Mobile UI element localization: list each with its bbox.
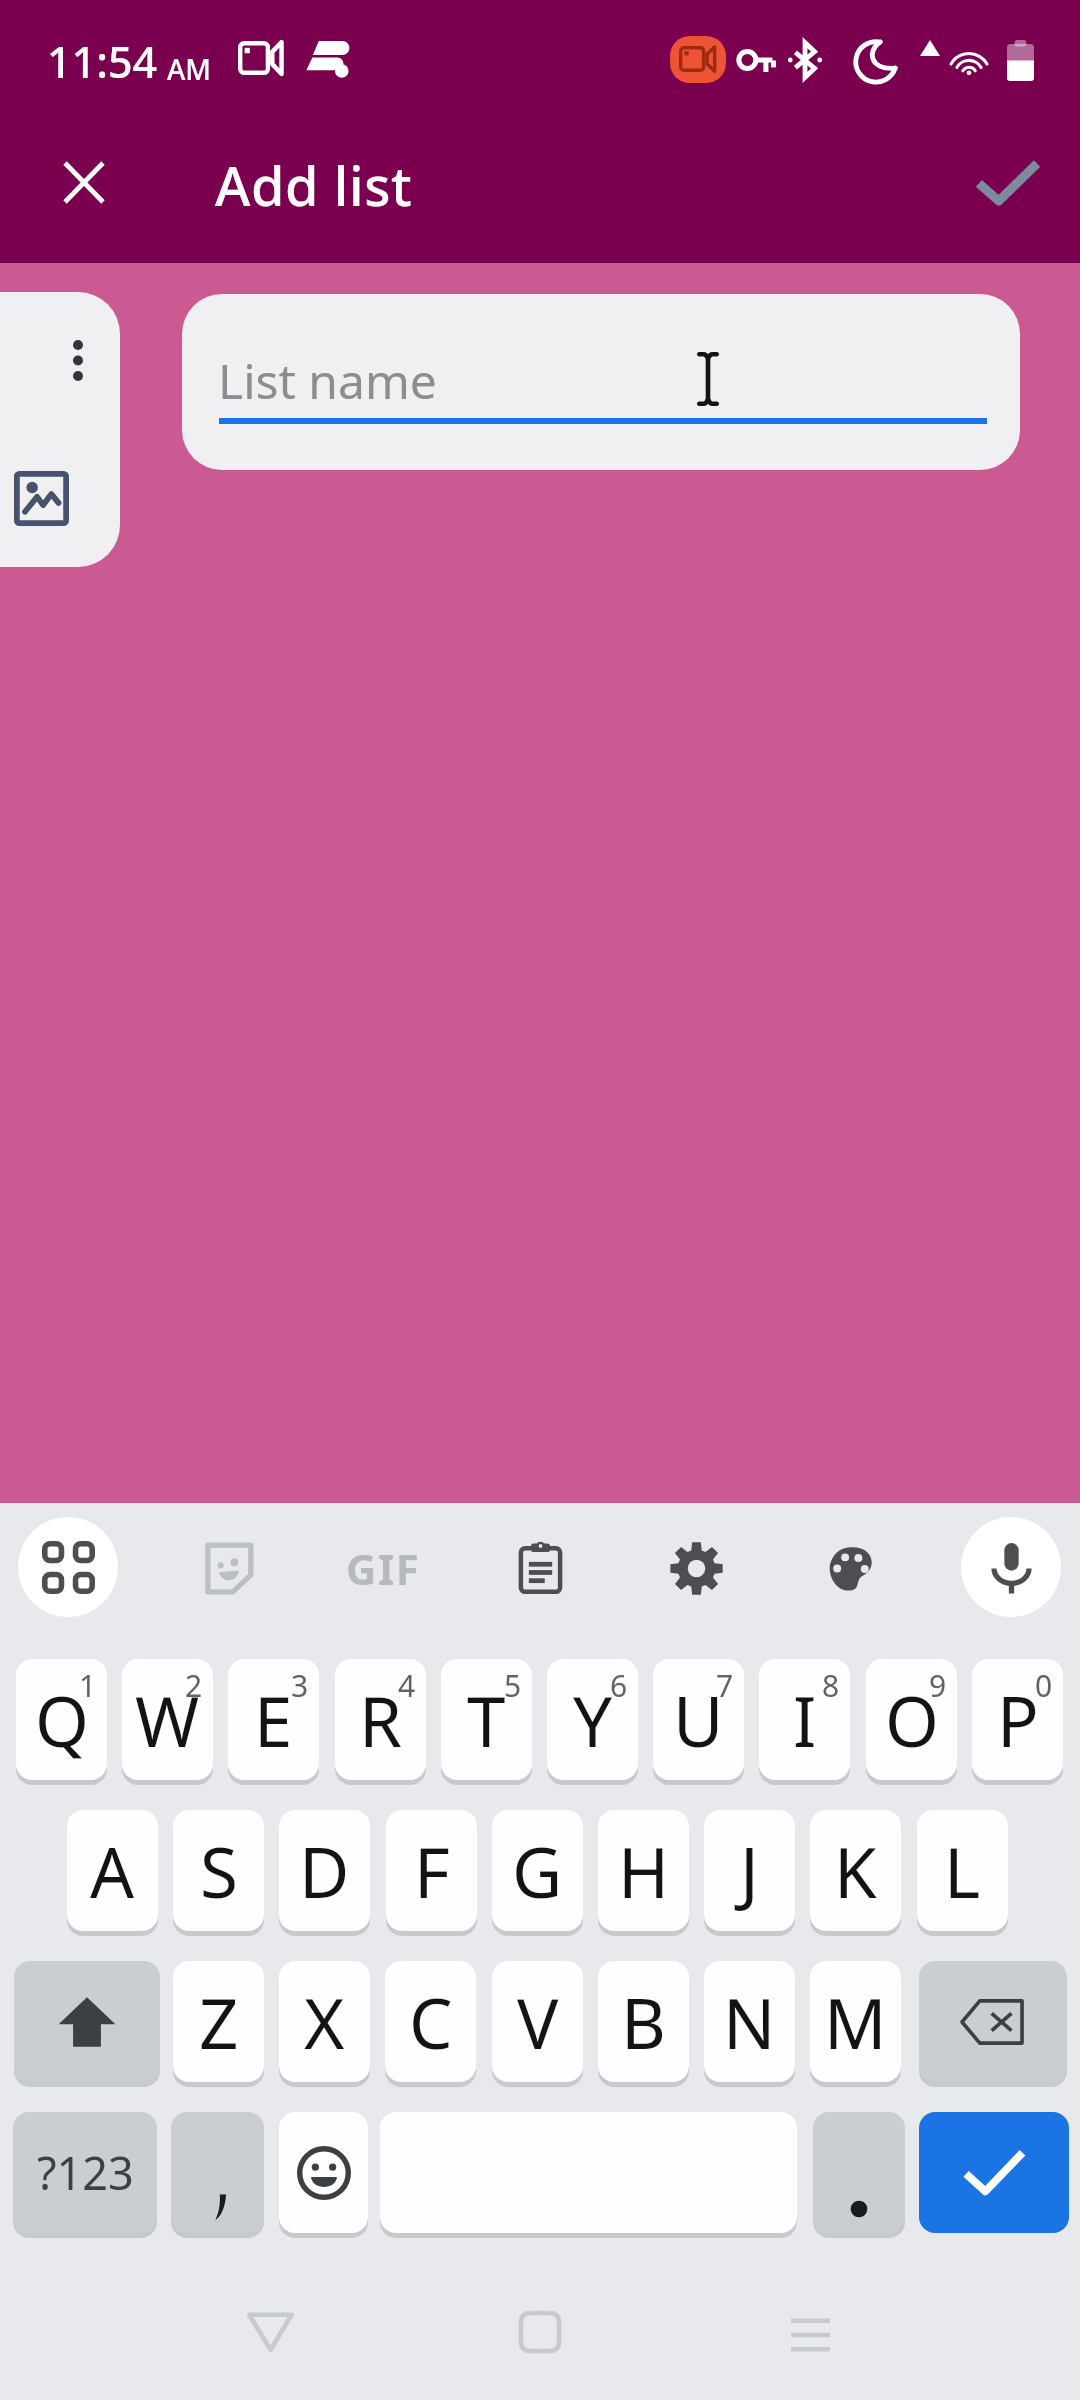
- staticText: V: [517, 1975, 559, 2069]
- staticText: List name: [218, 348, 437, 413]
- staticText: D: [299, 1824, 350, 1918]
- staticText: 9: [929, 1665, 947, 1706]
- button[interactable]: Comma: [171, 2112, 264, 2233]
- button[interactable]: Back: [225, 2287, 315, 2377]
- staticText: K: [834, 1824, 877, 1918]
- button[interactable]: List name: [182, 294, 1020, 470]
- button[interactable]: S: [173, 1810, 264, 1931]
- staticText: P: [997, 1673, 1039, 1767]
- staticText: Y: [573, 1673, 613, 1767]
- button[interactable]: Close: [29, 127, 139, 237]
- button[interactable]: W: [122, 1659, 213, 1780]
- button[interactable]: Add image: [0, 456, 83, 540]
- staticText: ?123: [37, 2142, 134, 2203]
- staticText: A: [90, 1824, 135, 1918]
- button[interactable]: Stickers: [177, 1518, 277, 1618]
- staticText: H: [618, 1824, 670, 1918]
- staticText: G: [512, 1824, 563, 1918]
- button[interactable]: U: [653, 1659, 744, 1780]
- staticText: R: [359, 1673, 402, 1767]
- staticText: E: [254, 1673, 293, 1767]
- staticText: 5: [504, 1665, 522, 1706]
- button[interactable]: Backspace: [919, 1961, 1067, 2082]
- button[interactable]: C: [385, 1961, 476, 2082]
- button[interactable]: Clipboard: [490, 1518, 590, 1618]
- button[interactable]: More options: [33, 315, 123, 405]
- staticText: O: [885, 1673, 939, 1767]
- button[interactable]: M: [810, 1961, 901, 2082]
- staticText: U: [673, 1673, 724, 1767]
- staticText: 4: [398, 1665, 416, 1706]
- button[interactable]: B: [598, 1961, 689, 2082]
- button[interactable]: A: [67, 1810, 158, 1931]
- staticText: X: [304, 1975, 345, 2069]
- button[interactable]: V: [492, 1961, 583, 2082]
- staticText: N: [723, 1975, 776, 2069]
- staticText: GIF: [346, 1540, 421, 1597]
- button[interactable]: Voice input: [961, 1517, 1061, 1617]
- button[interactable]: P: [972, 1659, 1063, 1780]
- button[interactable]: Z: [173, 1961, 264, 2082]
- button[interactable]: Save: [948, 127, 1068, 237]
- staticText: I: [793, 1673, 817, 1767]
- button[interactable]: Settings: [646, 1518, 746, 1618]
- staticText: Z: [199, 1975, 239, 2069]
- button[interactable]: Enter: [919, 2112, 1069, 2233]
- button[interactable]: Themes: [801, 1518, 901, 1618]
- button[interactable]: L: [917, 1810, 1008, 1931]
- staticText: T: [467, 1673, 506, 1767]
- staticText: M: [824, 1975, 887, 2069]
- button[interactable]: Recents: [765, 2290, 855, 2380]
- button[interactable]: K: [810, 1810, 901, 1931]
- staticText: 11:54: [47, 32, 158, 91]
- button[interactable]: D: [279, 1810, 370, 1931]
- button[interactable]: E: [228, 1659, 319, 1780]
- staticText: S: [200, 1824, 238, 1918]
- staticText: B: [621, 1975, 666, 2069]
- staticText: Q: [35, 1673, 89, 1767]
- staticText: 8: [822, 1665, 840, 1706]
- staticText: J: [740, 1824, 759, 1918]
- button[interactable]: H: [598, 1810, 689, 1931]
- staticText: 3: [291, 1665, 309, 1706]
- button[interactable]: ?123: [13, 2112, 157, 2233]
- button[interactable]: Emoji: [279, 2112, 368, 2233]
- button[interactable]: G: [492, 1810, 583, 1931]
- button[interactable]: R: [335, 1659, 426, 1780]
- button[interactable]: T: [441, 1659, 532, 1780]
- button[interactable]: Q: [16, 1659, 107, 1780]
- staticText: 6: [610, 1665, 628, 1706]
- staticText: F: [414, 1824, 450, 1918]
- button[interactable]: F: [386, 1810, 477, 1931]
- staticText: 0: [1035, 1665, 1053, 1706]
- staticText: 2: [185, 1665, 203, 1706]
- button[interactable]: Home: [495, 2287, 585, 2377]
- button[interactable]: GIF: [333, 1518, 433, 1618]
- staticText: 7: [716, 1665, 734, 1706]
- button[interactable]: Y: [547, 1659, 638, 1780]
- staticText: Add list: [215, 148, 413, 222]
- button[interactable]: Period: [813, 2112, 905, 2233]
- button[interactable]: N: [704, 1961, 795, 2082]
- button[interactable]: X: [279, 1961, 370, 2082]
- button[interactable]: O: [866, 1659, 957, 1780]
- staticText: AM: [167, 50, 212, 88]
- staticText: L: [944, 1824, 981, 1918]
- staticText: 1: [79, 1665, 97, 1706]
- button[interactable]: J: [704, 1810, 795, 1931]
- button[interactable]: I: [759, 1659, 850, 1780]
- staticText: C: [409, 1975, 453, 2069]
- button[interactable]: Apps: [18, 1517, 118, 1617]
- staticText: W: [135, 1673, 200, 1767]
- button[interactable]: Shift: [14, 1961, 160, 2082]
